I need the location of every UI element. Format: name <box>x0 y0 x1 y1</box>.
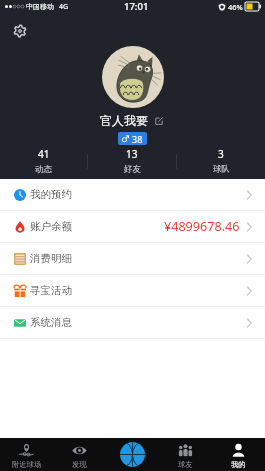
staticText: ¥4899678.46 <box>164 218 240 235</box>
button[interactable]: 附近球场 <box>0 438 53 471</box>
button[interactable]: 球友 <box>159 438 212 471</box>
button[interactable]: 系统消息 <box>0 307 265 338</box>
staticText: 消费明细 <box>30 252 72 265</box>
staticText: 官人我要 <box>100 113 148 128</box>
staticText: 动态 <box>35 164 52 175</box>
button[interactable]: 13 <box>88 147 176 175</box>
staticText: 中国移动 <box>26 2 54 11</box>
button[interactable]: 41 <box>0 147 87 175</box>
staticText: 我的预约 <box>30 188 72 201</box>
staticText: 账户余额 <box>30 220 72 233</box>
button[interactable]: 我的预约 <box>0 179 265 210</box>
button[interactable]: Edit profile <box>153 115 165 127</box>
button[interactable]: 38 <box>118 132 147 145</box>
staticText: 3 <box>218 147 224 161</box>
staticText: 46% <box>228 2 243 12</box>
staticText: 附近球场 <box>12 460 42 469</box>
button[interactable]: 发现 <box>53 438 106 471</box>
staticText: 4G <box>59 2 69 12</box>
staticText: 38 <box>132 133 143 145</box>
staticText: 系统消息 <box>30 316 72 329</box>
button[interactable]: Avatar <box>102 46 164 108</box>
button[interactable]: Settings <box>8 19 32 43</box>
button[interactable]: 消费明细 <box>0 243 265 274</box>
staticText: 13 <box>126 147 138 161</box>
button[interactable]: 3 <box>177 147 265 175</box>
staticText: 球友 <box>178 460 193 469</box>
staticText: 球队 <box>213 164 230 175</box>
staticText: 发现 <box>72 460 87 469</box>
staticText: 好友 <box>124 164 141 175</box>
staticText: 寻宝活动 <box>30 284 72 297</box>
staticText: 17:01 <box>124 0 149 13</box>
button[interactable]: Play basketball <box>106 438 159 471</box>
staticText: 我的 <box>231 460 246 469</box>
button[interactable]: 我的 <box>212 438 265 471</box>
button[interactable]: 寻宝活动 <box>0 275 265 306</box>
button[interactable]: 账户余额 <box>0 211 265 242</box>
staticText: 41 <box>38 147 50 161</box>
